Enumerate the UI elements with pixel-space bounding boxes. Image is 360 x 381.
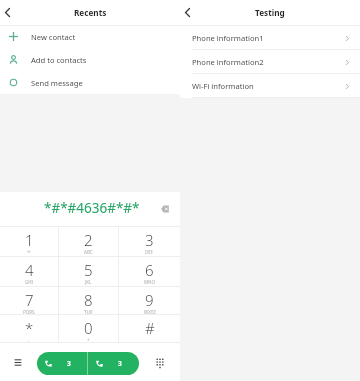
staticText: * xyxy=(25,318,34,338)
button[interactable]: Phone information1 xyxy=(180,26,360,50)
button[interactable]: Phone information2 xyxy=(180,50,360,74)
button[interactable]: 4 xyxy=(0,257,58,286)
staticText: Add to contacts xyxy=(31,55,87,65)
staticText: 9 xyxy=(145,290,154,310)
staticText: 5 xyxy=(84,260,93,280)
button[interactable]: 7 xyxy=(0,287,58,314)
staticText: PQRS xyxy=(23,309,35,315)
button[interactable]: 3 xyxy=(119,227,180,256)
staticText: + xyxy=(87,337,90,343)
staticText: New contact xyxy=(31,32,76,42)
button[interactable]: * xyxy=(0,315,58,342)
button[interactable]: Call with SIM 2 xyxy=(88,352,139,375)
button[interactable]: Back xyxy=(0,0,15,25)
staticText: ∞ xyxy=(27,249,31,254)
staticText: 1 xyxy=(25,230,34,250)
staticText: TUV xyxy=(84,309,93,315)
staticText: Send message xyxy=(31,78,83,88)
staticText: 3 xyxy=(118,359,122,368)
button[interactable]: 1 xyxy=(0,227,58,256)
staticText: WXYZ xyxy=(144,309,156,315)
button[interactable]: Keypad xyxy=(139,343,180,381)
staticText: 7 xyxy=(25,290,34,310)
button[interactable]: 8 xyxy=(59,287,118,314)
button[interactable]: 6 xyxy=(119,257,180,286)
staticText: , xyxy=(28,337,30,343)
button[interactable]: Backspace xyxy=(158,202,172,216)
staticText: 0 xyxy=(84,318,93,338)
button[interactable]: 2 xyxy=(59,227,118,256)
staticText: GHI xyxy=(25,279,34,285)
staticText: JKL xyxy=(85,279,92,285)
button[interactable]: Send message xyxy=(0,71,180,94)
button[interactable]: 5 xyxy=(59,257,118,286)
staticText: 3 xyxy=(67,359,71,368)
button[interactable]: New contact xyxy=(0,25,180,48)
staticText: *#*#4636#*#* xyxy=(44,199,140,217)
staticText: MNO xyxy=(144,279,156,285)
staticText: Phone information1 xyxy=(192,33,264,43)
staticText: 6 xyxy=(145,260,154,280)
button[interactable]: Add to contacts xyxy=(0,48,180,71)
button[interactable]: Back xyxy=(180,0,195,25)
staticText: 2 xyxy=(84,230,93,250)
button[interactable]: 0 xyxy=(59,315,118,342)
staticText: Testing xyxy=(255,7,285,18)
staticText: Wi-Fi information xyxy=(192,81,254,91)
button[interactable]: Wi-Fi information xyxy=(180,74,360,98)
button[interactable]: Call with SIM 1 xyxy=(37,352,87,375)
staticText: Phone information2 xyxy=(192,57,264,67)
staticText: 3 xyxy=(145,230,154,250)
button[interactable]: 9 xyxy=(119,287,180,314)
staticText: ABC xyxy=(84,249,93,255)
staticText: Recents xyxy=(74,7,107,18)
staticText: # xyxy=(145,318,155,338)
button[interactable]: # xyxy=(119,315,180,342)
button[interactable]: Call log xyxy=(0,343,37,381)
staticText: 8 xyxy=(84,290,93,310)
staticText: 4 xyxy=(25,260,34,280)
staticText: DEF xyxy=(145,249,154,255)
